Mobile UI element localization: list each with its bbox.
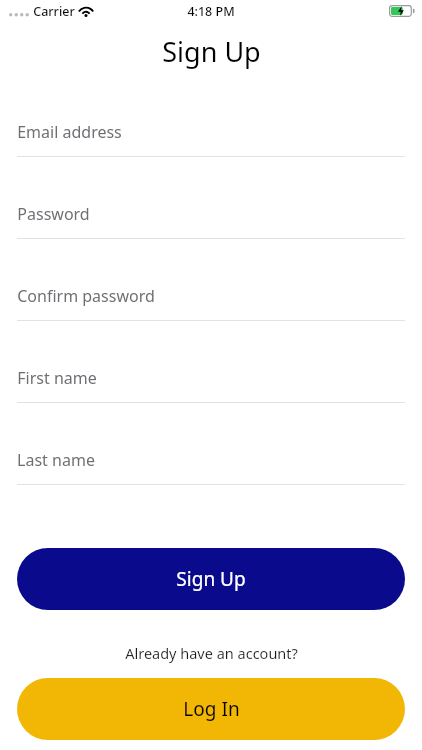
staticText: Sign Up — [162, 33, 261, 70]
button[interactable]: Log In — [17, 678, 405, 740]
staticText: Sign Up — [176, 566, 246, 592]
button[interactable]: Email address — [0, 108, 422, 190]
staticText: 4:18 PM — [187, 3, 235, 20]
staticText: Confirm password — [17, 285, 155, 307]
button[interactable]: Sign Up — [17, 548, 405, 610]
button[interactable]: Password — [0, 190, 422, 272]
staticText: First name — [17, 367, 97, 389]
staticText: Password — [17, 203, 90, 225]
staticText: Email address — [17, 121, 122, 143]
button[interactable]: First name — [0, 354, 422, 436]
staticText: Carrier — [33, 3, 75, 20]
staticText: Log In — [183, 696, 240, 722]
staticText: Already have an account? — [125, 643, 298, 663]
button[interactable]: Last name — [0, 436, 422, 518]
staticText: Last name — [17, 449, 95, 471]
button[interactable]: Confirm password — [0, 272, 422, 354]
